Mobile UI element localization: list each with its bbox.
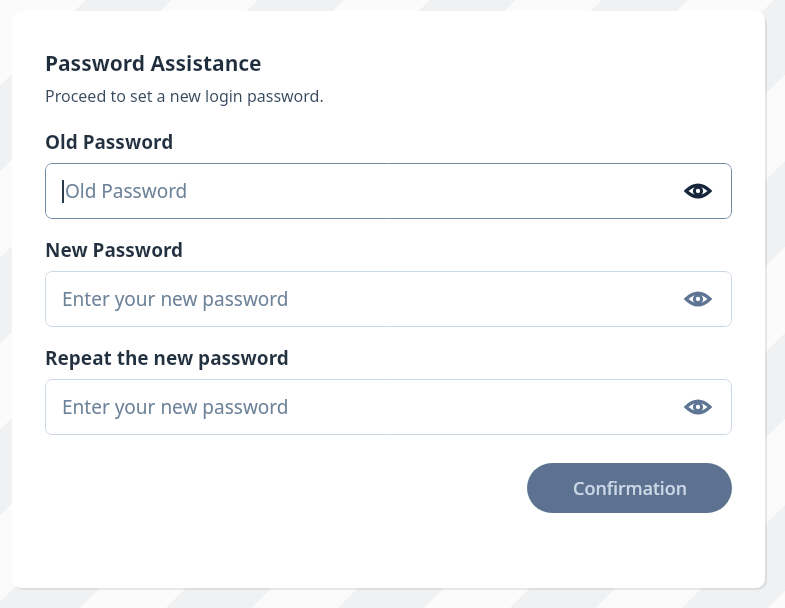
staticText: Enter your new password	[62, 394, 681, 420]
button[interactable]: Enter your new password	[45, 271, 732, 327]
staticText: Old Password	[65, 178, 681, 204]
button[interactable]: Show password	[681, 390, 715, 424]
staticText: Old Password	[45, 129, 174, 155]
button[interactable]: Enter your new password	[45, 379, 732, 435]
button[interactable]: Old Password	[45, 163, 732, 219]
staticText: Confirmation	[573, 476, 687, 501]
staticText: Enter your new password	[62, 286, 681, 312]
staticText: Proceed to set a new login password.	[45, 85, 324, 107]
button[interactable]: Show password	[681, 174, 715, 208]
staticText: Repeat the new password	[45, 345, 289, 371]
staticText: Password Assistance	[45, 49, 262, 78]
staticText: New Password	[45, 237, 184, 263]
button[interactable]: Confirmation	[527, 463, 732, 513]
button[interactable]: Show password	[681, 282, 715, 316]
